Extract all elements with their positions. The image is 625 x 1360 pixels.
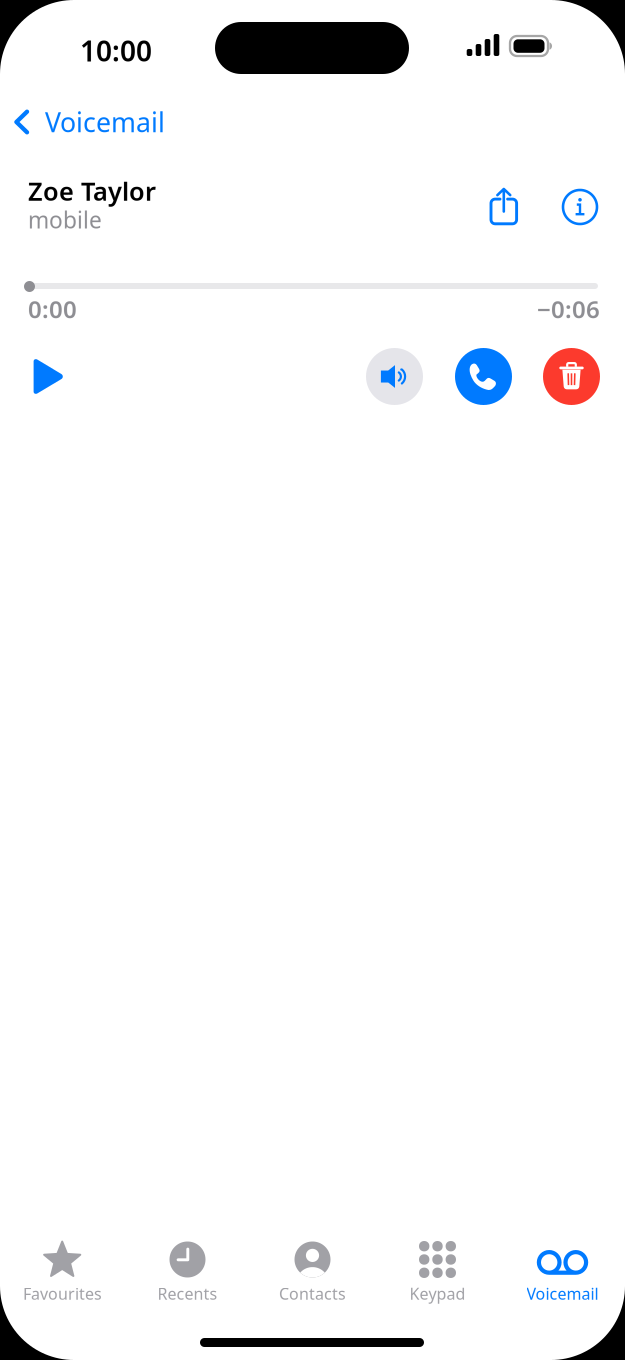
staticText: 10:00 — [80, 32, 152, 69]
staticText: Voicemail — [526, 1283, 598, 1304]
button[interactable]: Keypad — [375, 1236, 500, 1308]
button[interactable]: Play — [22, 348, 74, 405]
button[interactable]: Voicemail — [500, 1236, 625, 1308]
staticText: Zoe Taylor — [28, 174, 156, 208]
button[interactable]: Voicemail — [0, 98, 240, 146]
button[interactable]: Favourites — [0, 1236, 125, 1308]
staticText: Contacts — [279, 1283, 346, 1304]
staticText: 0:00 — [28, 293, 77, 325]
button[interactable]: Contacts — [250, 1236, 375, 1308]
staticText: −0:06 — [537, 293, 600, 325]
staticText: Voicemail — [45, 104, 165, 140]
button[interactable]: Recents — [125, 1236, 250, 1308]
button[interactable]: Speaker — [366, 348, 423, 405]
staticText: mobile — [28, 205, 102, 235]
button[interactable]: Share — [477, 175, 531, 237]
staticText: Recents — [157, 1283, 217, 1304]
button[interactable]: Info — [551, 178, 609, 236]
button[interactable]: Call back — [455, 348, 512, 405]
button[interactable]: Delete — [543, 348, 600, 405]
staticText: Keypad — [409, 1283, 465, 1304]
staticText: Favourites — [23, 1283, 102, 1304]
